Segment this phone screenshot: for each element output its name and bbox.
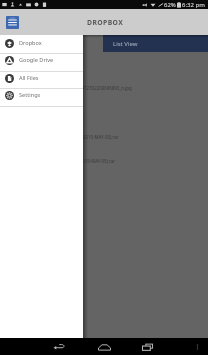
staticText: 11229911_380912782200696893_n.jpg xyxy=(52,85,132,91)
staticText: List View xyxy=(113,40,138,48)
staticText: Facebook(2015-MAY-05).rar xyxy=(62,134,119,140)
staticText: Google Drive xyxy=(19,56,54,64)
button[interactable]: Back xyxy=(51,341,67,353)
button[interactable]: 11229911_380912782200696893_n.jpg xyxy=(0,84,208,91)
staticText: 6:32 pm xyxy=(182,1,205,9)
button[interactable]: Dropbox xyxy=(0,36,83,54)
staticText: 62% xyxy=(164,1,176,9)
button[interactable]: Home xyxy=(97,341,112,353)
button[interactable]: Facebook(2015-MAY-05).rar xyxy=(0,133,208,140)
staticText: DROPBOX xyxy=(87,18,124,27)
button[interactable]: Recent apps xyxy=(141,341,156,353)
staticText: Dropbox xyxy=(19,39,42,47)
button[interactable]: List View xyxy=(103,35,208,52)
staticText: Settings xyxy=(19,91,41,99)
button[interactable]: Open navigation drawer xyxy=(6,16,19,29)
button[interactable]: Twitter(2015-MAY-05).rar xyxy=(0,157,208,164)
button[interactable]: Google Drive xyxy=(0,53,83,71)
button[interactable]: Settings xyxy=(0,88,83,106)
staticText: Twitter(2015-MAY-05).rar xyxy=(64,158,116,164)
staticText: All Files xyxy=(19,74,39,82)
button[interactable]: All Files xyxy=(0,71,83,89)
